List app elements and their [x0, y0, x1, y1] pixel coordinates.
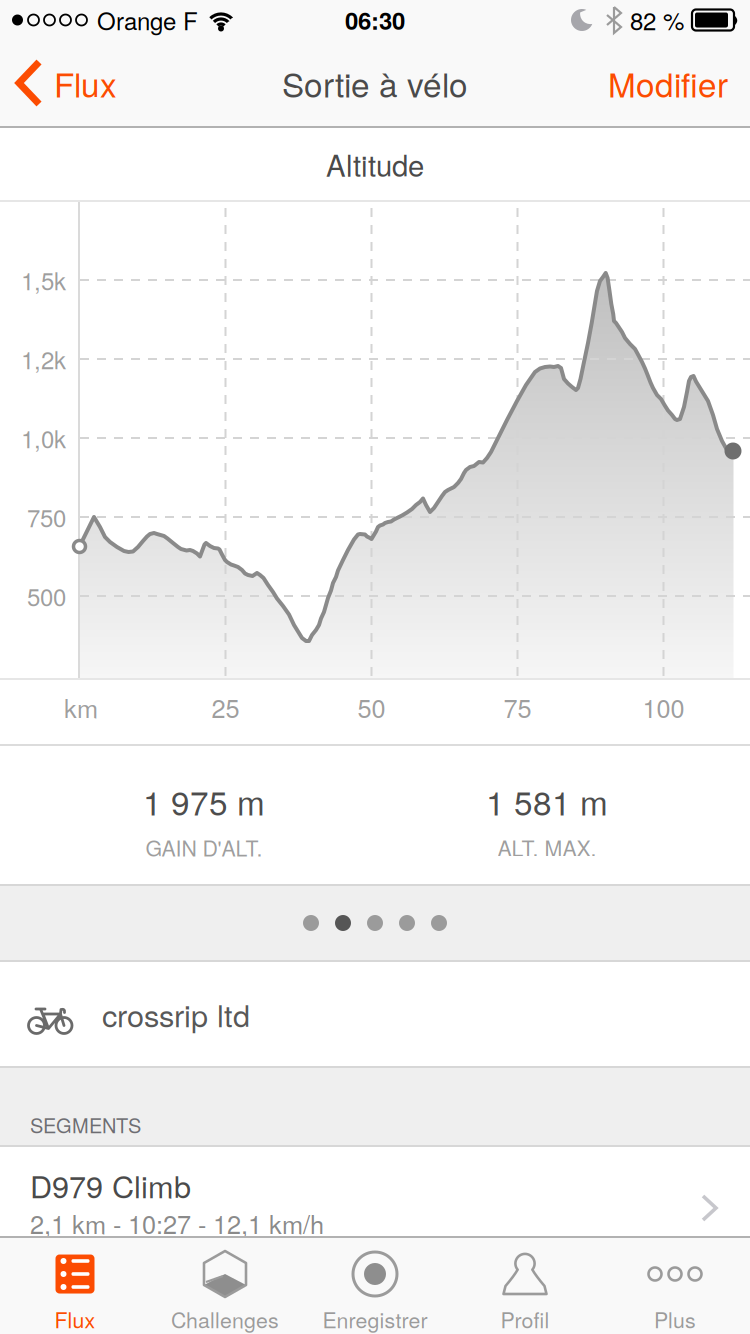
staticText: 1 975 m — [143, 778, 265, 824]
staticText: 2,1 km - 10:27 - 12,1 km/h — [30, 1205, 324, 1241]
staticText: GAIN D'ALT. — [145, 832, 262, 862]
staticText: Flux — [54, 1304, 95, 1334]
staticText: 50 — [357, 689, 385, 725]
button[interactable]: D979 Climb segment — [0, 1147, 750, 1236]
staticText: Plus — [654, 1304, 696, 1334]
button[interactable]: Back to Flux — [0, 60, 117, 106]
staticText: 1,2k — [21, 342, 66, 376]
staticText: 25 — [211, 689, 239, 725]
button[interactable]: Modifier — [608, 60, 750, 106]
staticText: Profil — [500, 1304, 549, 1334]
staticText: Modifier — [608, 60, 728, 106]
button[interactable]: Profil — [450, 1238, 600, 1334]
staticText: 1 581 m — [486, 778, 608, 824]
staticText: ALT. MAX. — [497, 832, 596, 862]
staticText: crossrip ltd — [102, 993, 250, 1035]
staticText: Challenges — [171, 1304, 279, 1334]
staticText: 100 — [642, 689, 684, 725]
staticText: Flux — [54, 60, 117, 106]
button[interactable]: Plus — [600, 1238, 750, 1334]
button[interactable]: Flux — [0, 1238, 150, 1334]
staticText: SEGMENTS — [30, 1110, 141, 1138]
staticText: Orange F — [97, 3, 198, 37]
staticText: Sortie à vélo — [282, 60, 468, 106]
staticText: Enregistrer — [322, 1304, 427, 1334]
button[interactable]: Enregistrer — [300, 1238, 450, 1334]
button[interactable]: crossrip ltd — [0, 962, 750, 1066]
staticText: 1,5k — [21, 263, 66, 297]
staticText: 06:30 — [345, 3, 405, 37]
staticText: D979 Climb — [30, 1164, 191, 1206]
staticText: 1,0k — [21, 421, 66, 455]
button[interactable]: Challenges — [150, 1238, 300, 1334]
staticText: 82 % — [630, 3, 684, 37]
staticText: km — [64, 689, 98, 725]
staticText: 750 — [27, 500, 66, 534]
staticText: 75 — [503, 689, 531, 725]
staticText: 500 — [27, 579, 66, 613]
staticText: Altitude — [326, 143, 424, 184]
